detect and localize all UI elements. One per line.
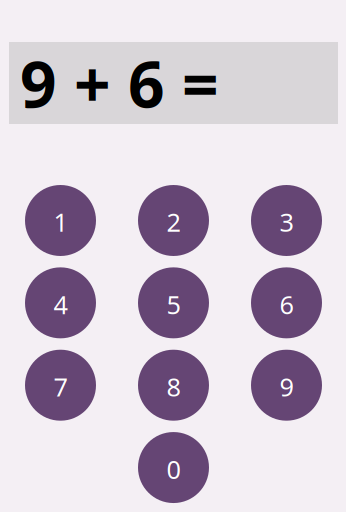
- button[interactable]: 5: [138, 267, 209, 338]
- button[interactable]: 8: [138, 350, 209, 421]
- button[interactable]: 7: [25, 350, 96, 421]
- staticText: 7: [53, 370, 67, 403]
- staticText: 4: [53, 287, 67, 321]
- button[interactable]: 0: [138, 432, 209, 503]
- button[interactable]: 2: [138, 185, 209, 256]
- staticText: 3: [279, 205, 293, 239]
- staticText: 9: [279, 370, 293, 403]
- staticText: 9 + 6 =: [20, 40, 219, 125]
- staticText: 0: [166, 452, 180, 486]
- button[interactable]: 1: [25, 185, 96, 256]
- button[interactable]: 4: [25, 267, 96, 338]
- button[interactable]: 9: [251, 350, 322, 421]
- staticText: 1: [53, 205, 67, 239]
- staticText: 8: [166, 370, 180, 403]
- button[interactable]: 3: [251, 185, 322, 256]
- staticText: 5: [166, 287, 180, 321]
- staticText: 2: [166, 205, 180, 239]
- button[interactable]: 6: [251, 267, 322, 338]
- staticText: 6: [279, 287, 293, 321]
